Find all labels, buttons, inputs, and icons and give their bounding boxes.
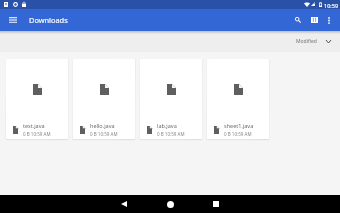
- staticText: 0 B 10:59 AM: [157, 131, 185, 137]
- staticText: hello.java: [90, 122, 115, 129]
- button[interactable]: More options: [322, 9, 335, 31]
- button[interactable]: Recent apps: [192, 195, 239, 213]
- button[interactable]: lab.java: [140, 59, 202, 139]
- button[interactable]: Menu: [0, 9, 25, 31]
- staticText: Modified: [296, 38, 317, 45]
- staticText: sheet1.java: [224, 122, 254, 129]
- button[interactable]: Search: [289, 9, 306, 31]
- button[interactable]: Modified: [293, 35, 334, 48]
- staticText: 0 B 10:59 AM: [23, 131, 51, 137]
- staticText: 10:59: [324, 2, 339, 9]
- button[interactable]: sheet1.java: [207, 59, 269, 139]
- staticText: Downloads: [29, 15, 68, 25]
- button[interactable]: hello.java: [73, 59, 135, 139]
- staticText: 0 B 10:59 AM: [224, 131, 252, 137]
- button[interactable]: View as grid: [306, 9, 322, 31]
- staticText: test.java: [23, 122, 45, 129]
- button[interactable]: Home: [147, 195, 194, 213]
- staticText: 0 B 10:59 AM: [90, 131, 118, 137]
- staticText: lab.java: [157, 122, 177, 129]
- button[interactable]: Back: [100, 195, 147, 213]
- button[interactable]: test.java: [6, 59, 68, 139]
